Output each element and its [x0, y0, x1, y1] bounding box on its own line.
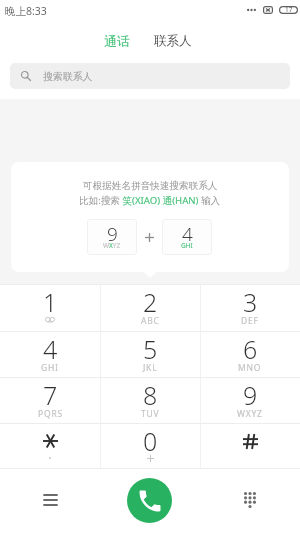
staticText: 3	[243, 285, 258, 319]
staticText: WXYZ	[237, 408, 263, 420]
button[interactable]: 6	[200, 331, 300, 377]
button[interactable]: 搜索联系人	[10, 63, 290, 89]
button[interactable]	[200, 423, 300, 468]
button[interactable]: 通话	[97, 30, 137, 52]
button[interactable]: 联系人	[148, 30, 198, 52]
staticText: 7	[43, 378, 58, 412]
button[interactable]: 9	[200, 377, 300, 423]
button[interactable]: Call log menu	[20, 477, 80, 523]
staticText: 通话	[104, 33, 130, 49]
button[interactable]: Dialpad	[220, 477, 280, 523]
staticText: GHI	[181, 241, 193, 250]
button[interactable]: 4	[162, 219, 212, 255]
staticText: 1	[43, 285, 58, 319]
button[interactable]: 3	[200, 284, 300, 331]
button[interactable]: 8	[100, 377, 200, 423]
staticText: 9	[243, 378, 258, 412]
button[interactable]: 0	[100, 423, 200, 468]
staticText: 4	[43, 332, 58, 366]
button[interactable]: 9	[87, 219, 137, 255]
button[interactable]: 7	[0, 377, 100, 423]
staticText: 比如:搜索 笑(XIAO) 通(HAN) 输入	[79, 194, 221, 207]
staticText: DEF	[241, 315, 259, 327]
staticText: 晚上8:33	[5, 4, 47, 18]
staticText: 搜索联系人	[43, 70, 93, 82]
button[interactable]: 2	[100, 284, 200, 331]
button[interactable]	[0, 423, 100, 468]
button[interactable]: 5	[100, 331, 200, 377]
staticText: 6	[243, 332, 258, 366]
staticText: JKL	[143, 362, 158, 374]
staticText: PQRS	[38, 408, 63, 420]
staticText: MNO	[238, 362, 262, 374]
staticText: ABC	[141, 315, 160, 327]
staticText: 9	[107, 221, 118, 247]
staticText: WXYZ	[103, 241, 121, 250]
staticText: 17	[285, 5, 293, 14]
staticText: 0	[143, 424, 158, 458]
button[interactable]: 1	[0, 284, 100, 331]
staticText: 4	[182, 221, 193, 247]
button[interactable]: Call	[127, 478, 172, 523]
staticText: 可根据姓名拼音快速搜索联系人	[83, 180, 218, 192]
staticText: TUV	[141, 408, 160, 420]
staticText: 5	[143, 332, 158, 366]
staticText: 8	[143, 378, 158, 412]
button[interactable]: 4	[0, 331, 100, 377]
staticText: 联系人	[154, 33, 192, 49]
staticText: 2	[143, 285, 158, 319]
staticText: GHI	[41, 362, 59, 374]
